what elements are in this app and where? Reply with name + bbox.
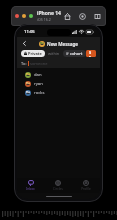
button[interactable]: cohort	[66, 50, 83, 57]
staticText: iOS 16.2	[37, 17, 51, 22]
button[interactable]: Rotate	[78, 12, 87, 21]
staticText: SEND	[89, 50, 93, 57]
button[interactable]: To:	[21, 59, 96, 67]
staticText: New Message	[47, 41, 78, 47]
button[interactable]: SEND	[89, 50, 93, 57]
staticText: Private	[28, 51, 42, 56]
button[interactable]: Private	[24, 50, 42, 57]
staticText: rocks	[34, 90, 45, 96]
staticText: someone	[30, 61, 48, 66]
staticText: 11:05	[24, 29, 35, 35]
button[interactable]: Minimise	[22, 14, 26, 18]
button[interactable]: Screenshot	[93, 12, 102, 21]
button[interactable]: Close	[15, 14, 19, 18]
button[interactable]: Zoom	[29, 14, 33, 18]
button[interactable]: Inbox	[17, 178, 44, 193]
staticText: Profile	[81, 187, 91, 191]
button[interactable]: Home	[63, 12, 72, 21]
button[interactable]: within	[48, 51, 60, 56]
button[interactable]: rocks	[17, 88, 100, 97]
button[interactable]: Profile	[72, 178, 100, 193]
button[interactable]: dan	[17, 70, 100, 79]
staticText: Inbox	[26, 187, 35, 191]
staticText: ryan	[34, 81, 43, 87]
button[interactable]: Circles	[44, 178, 72, 193]
staticText: dan	[34, 72, 42, 78]
staticText: To:	[21, 61, 27, 66]
staticText: cohort	[70, 51, 83, 56]
button[interactable]: Back	[20, 39, 29, 48]
staticText: Circles	[53, 187, 63, 191]
staticText: iPhone 14	[37, 10, 61, 17]
button[interactable]: ryan	[17, 79, 100, 88]
